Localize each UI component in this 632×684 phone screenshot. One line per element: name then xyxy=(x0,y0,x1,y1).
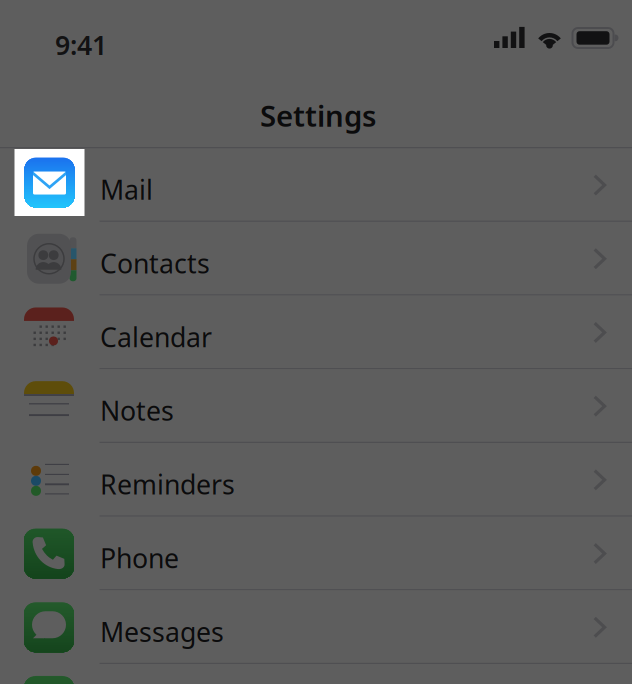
button[interactable]: Mail xyxy=(14,149,84,216)
staticText: 9:41 xyxy=(55,27,107,62)
staticText: Contacts xyxy=(100,245,210,281)
button[interactable]: Mail xyxy=(0,148,632,222)
staticText: Reminders xyxy=(100,466,235,502)
staticText: Notes xyxy=(100,393,174,428)
button[interactable]: Phone xyxy=(0,517,632,590)
button[interactable]: Contacts xyxy=(0,222,632,296)
staticText: Calendar xyxy=(100,319,212,354)
button[interactable]: Notes xyxy=(0,369,632,443)
button[interactable]: Reminders xyxy=(0,443,632,517)
button[interactable]: FaceTime xyxy=(0,664,632,684)
staticText: Settings xyxy=(260,96,376,135)
button[interactable]: Calendar xyxy=(0,296,632,369)
staticText: Messages xyxy=(100,614,224,649)
staticText: Mail xyxy=(100,172,153,207)
staticText: Phone xyxy=(100,540,179,576)
button[interactable]: Messages xyxy=(0,590,632,664)
